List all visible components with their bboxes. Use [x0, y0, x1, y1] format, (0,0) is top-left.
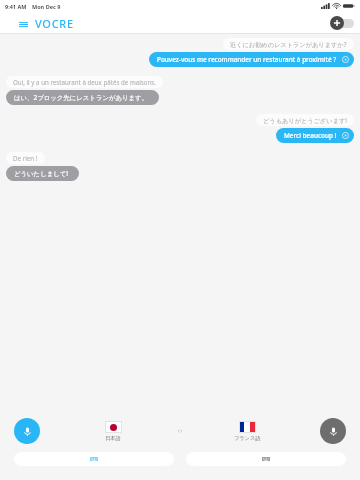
- staticText: Merci beaucoup !: [284, 131, 337, 140]
- staticText: フランス語: [234, 435, 261, 442]
- button[interactable]: French keyboard input: [186, 452, 346, 466]
- staticText: 近くにお勧めのレストランがありますか?: [230, 40, 347, 48]
- staticText: Oui, il y a un restaurant à deux pâtés d…: [13, 78, 156, 86]
- button[interactable]: Menu: [16, 17, 30, 31]
- button[interactable]: Pouvez-vous me recommander un restaurant…: [149, 52, 354, 67]
- button[interactable]: どういたしまして!: [6, 166, 79, 181]
- staticText: Mon Dec 9: [32, 3, 61, 10]
- staticText: どうもありがとうございます!: [263, 116, 347, 124]
- button[interactable]: Swap languages: [172, 423, 188, 439]
- button[interactable]: はい、2ブロック先にレストランがあります。: [6, 90, 159, 105]
- button[interactable]: 近くにお勧めのレストランがありますか?: [223, 38, 354, 50]
- staticText: VOCRE: [35, 16, 74, 31]
- staticText: はい、2ブロック先にレストランがあります。: [14, 93, 149, 102]
- button[interactable]: Japanese keyboard input: [14, 452, 174, 466]
- button[interactable]: Oui, il y a un restaurant à deux pâtés d…: [6, 76, 163, 88]
- button[interactable]: Add conversation: [330, 16, 354, 30]
- button[interactable]: フランス語: [188, 421, 306, 442]
- button[interactable]: 日本語: [54, 421, 172, 442]
- staticText: 9:41 AM: [5, 3, 27, 10]
- staticText: Pouvez-vous me recommander un restaurant…: [157, 55, 337, 64]
- staticText: 日本語: [105, 435, 121, 442]
- button[interactable]: Merci beaucoup !: [276, 128, 354, 143]
- button[interactable]: どうもありがとうございます!: [256, 114, 354, 126]
- staticText: De rien !: [13, 154, 38, 162]
- button[interactable]: De rien !: [6, 152, 45, 164]
- button[interactable]: Record French: [320, 418, 346, 444]
- staticText: どういたしまして!: [14, 169, 69, 178]
- button[interactable]: Record Japanese: [14, 418, 40, 444]
